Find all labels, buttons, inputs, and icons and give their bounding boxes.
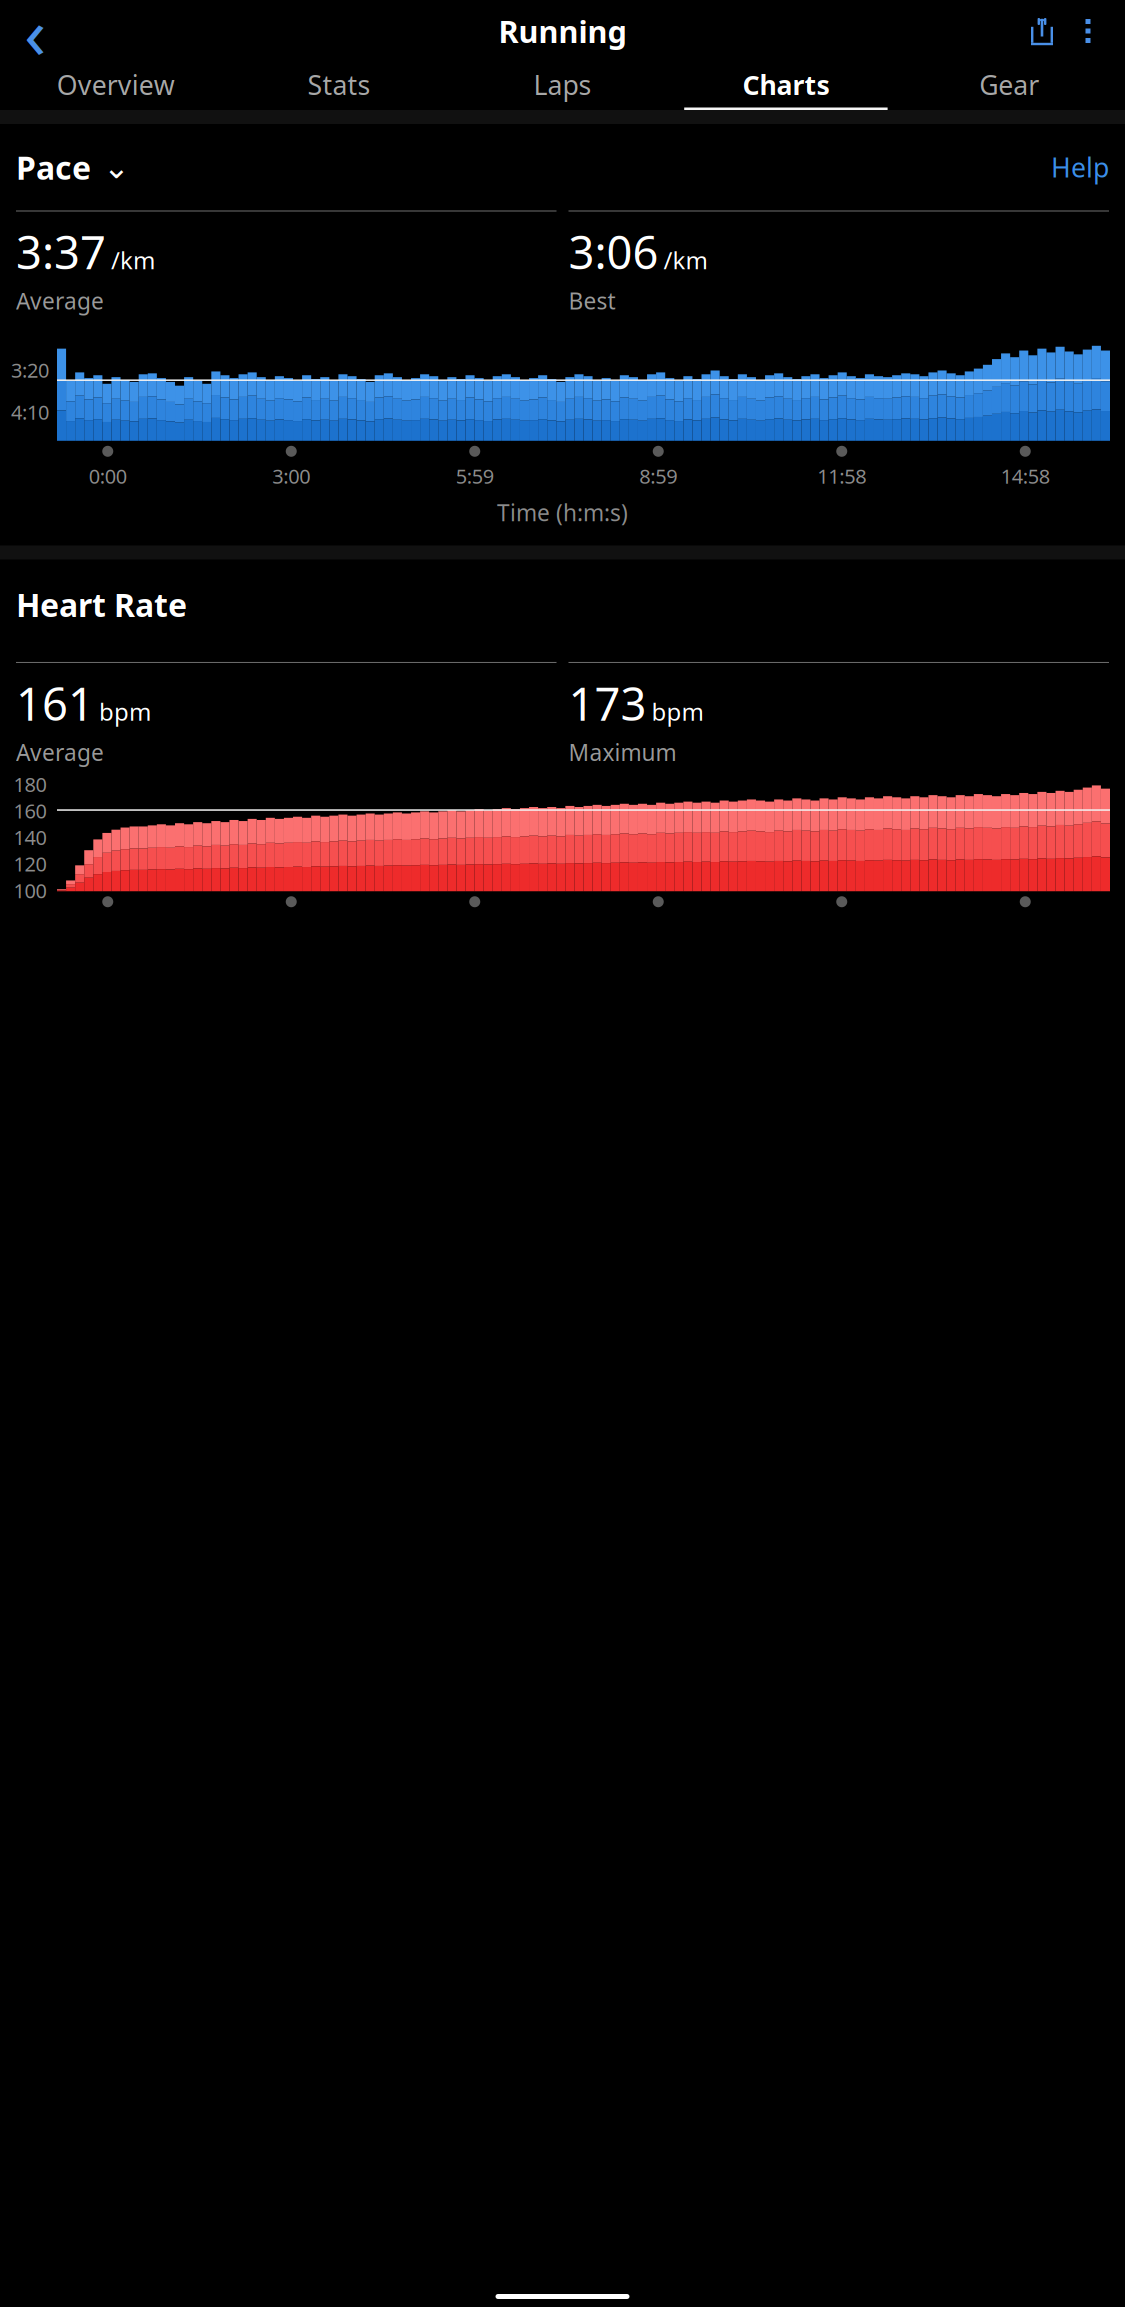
staticText: 3:37: [16, 221, 106, 282]
staticText: 11:58: [817, 463, 866, 489]
staticText: Heart Rate: [16, 583, 187, 626]
staticText: Best: [568, 286, 615, 316]
staticText: 173: [568, 673, 646, 733]
button[interactable]: Help: [1051, 149, 1109, 185]
staticText: ⌄: [103, 149, 130, 185]
staticText: Running: [498, 11, 626, 51]
button[interactable]: Overview: [4, 62, 227, 110]
staticText: bpm: [99, 695, 151, 727]
button[interactable]: Pace: [16, 146, 130, 188]
staticText: Maximum: [568, 737, 676, 767]
staticText: 180: [13, 771, 46, 797]
staticText: Pace: [16, 146, 91, 188]
staticText: 3:20: [11, 357, 49, 383]
staticText: 160: [13, 797, 46, 824]
staticText: Charts: [742, 67, 829, 102]
staticText: Average: [16, 286, 104, 316]
staticText: 5:59: [456, 463, 494, 489]
button[interactable]: Stats: [227, 62, 451, 110]
button[interactable]: More options: [1065, 8, 1111, 54]
button[interactable]: Share: [1019, 8, 1065, 54]
staticText: 3:00: [272, 463, 310, 489]
staticText: 120: [13, 850, 46, 877]
staticText: 8:59: [639, 463, 677, 489]
button[interactable]: Back: [8, 4, 62, 58]
staticText: /km: [663, 244, 707, 276]
staticText: 3:06: [568, 221, 658, 282]
staticText: Stats: [308, 67, 371, 102]
staticText: ‹: [24, 0, 46, 79]
staticText: Average: [16, 737, 104, 767]
staticText: Time (h:m:s): [497, 497, 628, 527]
staticText: 161: [16, 673, 94, 733]
staticText: Gear: [979, 67, 1039, 102]
staticText: 4:10: [11, 399, 49, 425]
button[interactable]: Charts: [674, 62, 898, 110]
staticText: 100: [13, 877, 46, 904]
staticText: Laps: [533, 67, 591, 102]
staticText: /km: [111, 244, 155, 276]
staticText: 140: [13, 824, 46, 851]
staticText: 0:00: [89, 463, 127, 489]
staticText: Overview: [57, 67, 175, 102]
button[interactable]: Laps: [451, 62, 674, 110]
staticText: 14:58: [1001, 463, 1050, 489]
button[interactable]: Gear: [898, 62, 1121, 110]
staticText: bpm: [651, 695, 703, 727]
staticText: Help: [1051, 149, 1109, 185]
